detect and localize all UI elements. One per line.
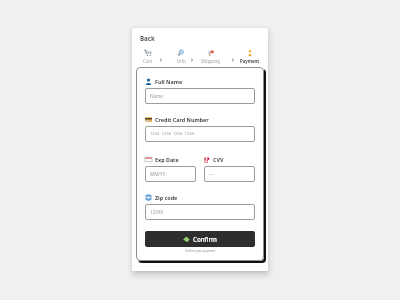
- staticText: ---: [209, 171, 214, 177]
- staticText: Info: [177, 58, 186, 64]
- button[interactable]: 12345: [145, 204, 255, 220]
- staticText: 12345: [150, 209, 164, 215]
- staticText: CVV: [213, 156, 224, 163]
- staticText: Payment: [240, 58, 260, 64]
- staticText: Full Name: [155, 78, 183, 85]
- button[interactable]: Back: [132, 33, 159, 43]
- staticText: MM/YY: [150, 171, 166, 177]
- button[interactable]: ---: [204, 166, 255, 182]
- staticText: Back: [140, 34, 155, 42]
- staticText: Credit Card Number: [155, 116, 209, 123]
- button[interactable]: Cart: [140, 49, 156, 64]
- staticText: Confirm: [193, 235, 217, 243]
- other: Shipping: [207, 49, 215, 57]
- button[interactable]: Confirm: [145, 231, 255, 247]
- button[interactable]: Name: [145, 88, 255, 104]
- other: Info: [177, 49, 185, 57]
- staticText: Cart: [143, 58, 153, 64]
- other: Payment: [246, 49, 254, 57]
- button[interactable]: Shipping: [199, 49, 223, 64]
- button[interactable]: MM/YY: [145, 166, 196, 182]
- staticText: Shipping: [201, 58, 221, 64]
- staticText: Exp Date: [155, 156, 179, 163]
- staticText: Confirm your payment: [145, 249, 255, 253]
- other: Cart: [144, 49, 152, 57]
- staticText: 1234 1234 1234 1234: [150, 131, 194, 137]
- staticText: Name: [150, 93, 163, 99]
- button[interactable]: Info: [173, 49, 189, 64]
- button[interactable]: Payment: [238, 49, 262, 64]
- button[interactable]: 1234 1234 1234 1234: [145, 126, 255, 142]
- staticText: Zip code: [155, 194, 178, 201]
